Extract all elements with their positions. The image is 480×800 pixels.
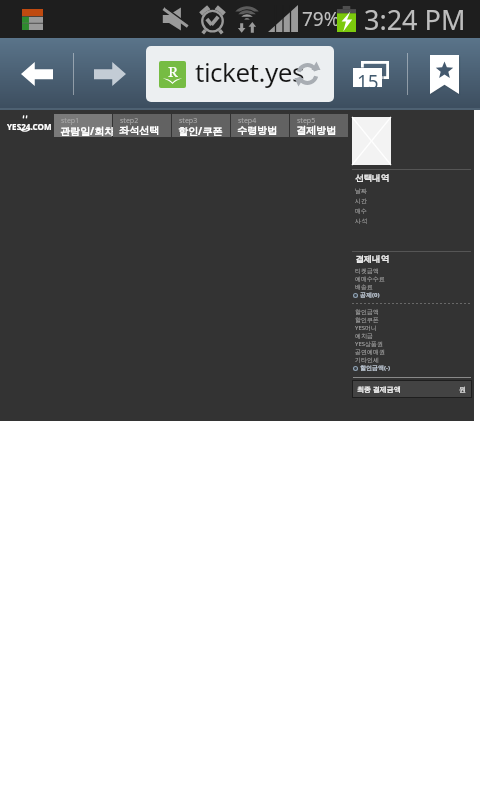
- staticText: 날짜: [355, 187, 367, 195]
- button[interactable]: step5: [290, 114, 348, 137]
- staticText: 원: [459, 385, 466, 394]
- staticText: 좌석선택: [119, 124, 159, 137]
- staticText: 할인금액(-): [360, 364, 390, 372]
- staticText: step5: [297, 116, 316, 126]
- button[interactable]: step2: [113, 114, 171, 137]
- staticText: step1: [61, 116, 80, 126]
- staticText: 할인쿠폰: [355, 316, 379, 324]
- button[interactable]: step1: [54, 114, 112, 137]
- button[interactable]: Tabs: [336, 38, 407, 110]
- staticText: step2: [120, 116, 139, 126]
- staticText: YES머니: [355, 324, 378, 332]
- staticText: 예매수수료: [355, 275, 385, 283]
- staticText: 관람일/회차: [60, 124, 115, 138]
- staticText: R: [168, 61, 178, 81]
- staticText: 79%: [302, 6, 340, 32]
- staticText: 15: [357, 69, 379, 95]
- staticText: step3: [179, 116, 198, 126]
- button[interactable]: step4: [231, 114, 289, 137]
- button[interactable]: Bookmarks: [408, 38, 480, 110]
- staticText: 티켓금액: [355, 267, 379, 275]
- staticText: 결제내역: [355, 254, 389, 265]
- staticText: 공연예매권: [355, 348, 385, 356]
- staticText: 결제방법: [296, 124, 336, 137]
- button[interactable]: R: [146, 46, 334, 102]
- staticText: YES상품권: [355, 340, 384, 348]
- staticText: 공제(0): [360, 291, 380, 299]
- button[interactable]: Back: [0, 38, 73, 110]
- staticText: 시간: [355, 197, 367, 205]
- staticText: 사석: [355, 217, 367, 225]
- button[interactable]: step3: [172, 114, 230, 137]
- staticText: 매수: [355, 207, 367, 215]
- button[interactable]: Forward: [74, 38, 146, 110]
- staticText: ticket.yes: [195, 54, 304, 89]
- staticText: 할인금액: [355, 308, 379, 316]
- staticText: 기타인세: [355, 356, 379, 364]
- staticText: 최종 결제금액: [357, 385, 401, 395]
- staticText: 수령방법: [237, 124, 277, 137]
- staticText: 예치금: [355, 332, 373, 340]
- button[interactable]: 최종 결제금액: [353, 381, 471, 397]
- staticText: 3:24 PM: [364, 1, 466, 38]
- staticText: step4: [238, 116, 257, 126]
- staticText: 할인/쿠폰: [178, 124, 223, 138]
- staticText: 배송료: [355, 283, 373, 291]
- staticText: 선택내역: [355, 173, 389, 184]
- staticText: YES24.COM: [7, 121, 51, 132]
